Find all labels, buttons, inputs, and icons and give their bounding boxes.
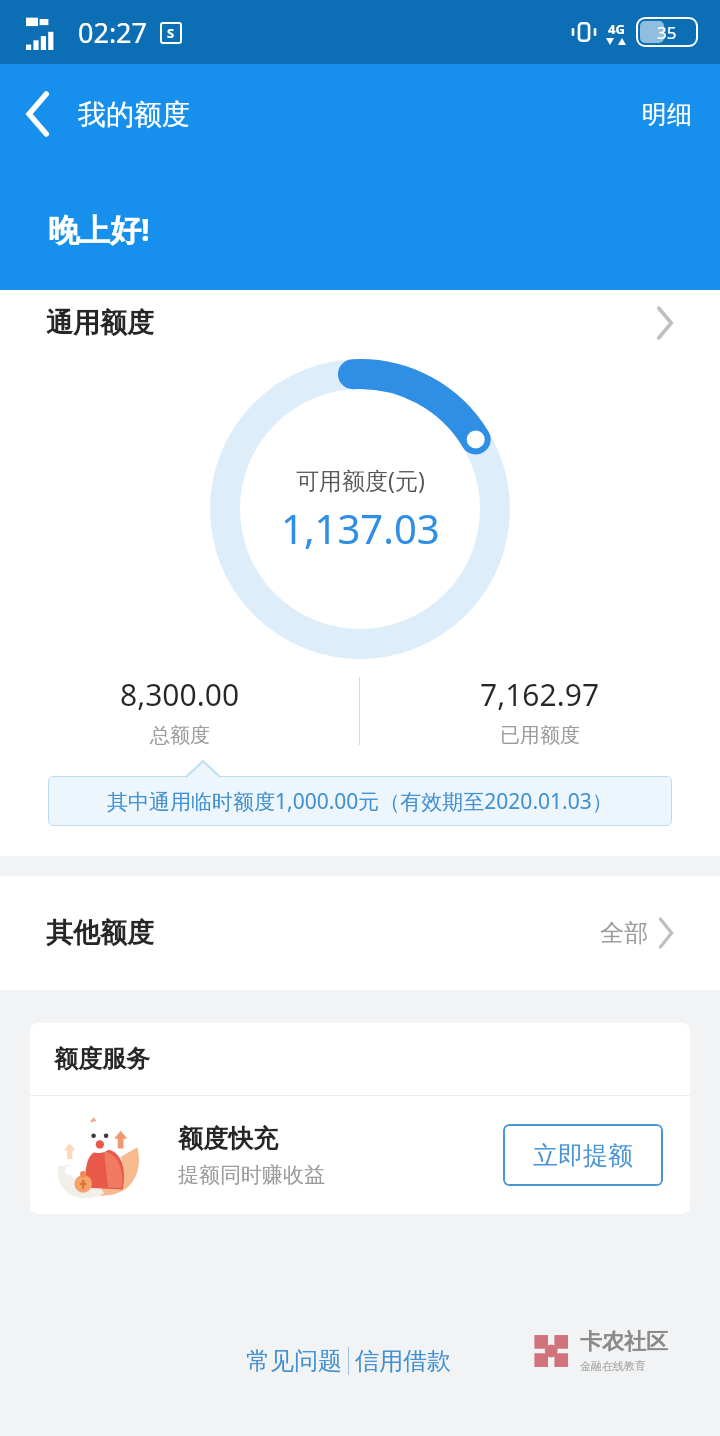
staticText: 可用额度(元) <box>296 464 425 495</box>
staticText: 通用额度 <box>46 306 154 340</box>
staticText: 额度快充 <box>178 1123 278 1154</box>
button[interactable]: 明细 <box>614 77 720 152</box>
button[interactable]: 信用借款 <box>349 1340 457 1382</box>
button[interactable]: 立即提额 <box>503 1124 663 1186</box>
staticText: 晚上好! <box>48 208 150 250</box>
staticText: 卡农社区 <box>580 1328 668 1356</box>
staticText: 信用借款 <box>355 1346 451 1376</box>
staticText: 我的额度 <box>78 97 190 132</box>
staticText: 金融在线教育 <box>580 1359 646 1373</box>
button[interactable]: 其他额度 <box>0 876 720 990</box>
staticText: 其他额度 <box>46 916 154 950</box>
staticText: 其中通用临时额度1,000.00元（有效期至2020.01.03） <box>107 787 613 816</box>
staticText: 全部 <box>600 918 648 948</box>
staticText: 35 <box>657 21 677 44</box>
staticText: 明细 <box>642 99 692 130</box>
button[interactable]: 常见问题 <box>240 1340 348 1382</box>
staticText: 已用额度 <box>500 723 580 748</box>
staticText: 常见问题 <box>246 1346 342 1376</box>
staticText: 总额度 <box>150 723 210 748</box>
staticText: 额度服务 <box>54 1044 150 1074</box>
staticText: 02:27 <box>78 14 148 51</box>
staticText: S <box>167 24 175 42</box>
staticText: 立即提额 <box>533 1140 633 1171</box>
button[interactable]: 通用额度 <box>0 290 720 356</box>
staticText: 7,162.97 <box>480 674 600 715</box>
staticText: 8,300.00 <box>120 674 240 715</box>
staticText: 1,137.03 <box>281 501 440 555</box>
staticText: 提额同时赚收益 <box>178 1162 325 1188</box>
staticText: 4G <box>608 20 625 38</box>
button[interactable]: Back <box>0 69 78 159</box>
